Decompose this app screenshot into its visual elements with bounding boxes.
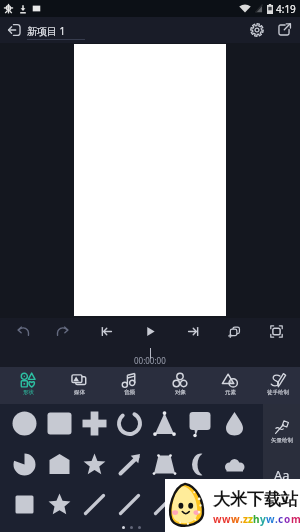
button[interactable]: Skip to start (93, 318, 119, 344)
staticText: y (260, 512, 266, 526)
staticText: w (266, 512, 275, 526)
button[interactable]: Shape 5 (182, 406, 216, 440)
button[interactable]: Shape 15 (42, 487, 76, 521)
button[interactable]: Shape 6 (217, 406, 251, 440)
staticText: 音频 (124, 389, 135, 396)
staticText: o (284, 512, 291, 526)
button[interactable]: Shape 10 (112, 447, 146, 481)
button[interactable]: Shape 2 (77, 406, 111, 440)
button[interactable]: Shape 7 (7, 447, 41, 481)
button[interactable]: Shape 9 (77, 447, 111, 481)
staticText: m (291, 512, 300, 526)
button[interactable]: Shape 11 (147, 447, 181, 481)
button[interactable]: Fullscreen (263, 318, 289, 344)
button[interactable]: 媒体 (54, 367, 104, 404)
staticText: 元素 (225, 389, 236, 396)
button[interactable]: Shape 4 (147, 406, 181, 440)
button[interactable]: Undo (10, 318, 36, 344)
staticText: z (248, 512, 253, 526)
button[interactable]: 音频 (104, 367, 154, 404)
button[interactable]: 徒手绘制 (253, 367, 300, 404)
staticText: w (231, 512, 240, 526)
staticText: w (222, 512, 231, 526)
staticText: 4:19 (276, 2, 296, 16)
staticText: 文本 (276, 485, 287, 492)
staticText: 媒体 (74, 389, 85, 396)
button[interactable]: Shape 13 (217, 447, 251, 481)
button[interactable]: Shape 1 (42, 406, 76, 440)
staticText: h (253, 512, 260, 526)
staticText: 形状 (23, 389, 34, 396)
button[interactable]: Skip to end (180, 318, 206, 344)
button[interactable]: Shape 18 (147, 487, 181, 521)
button[interactable]: Shape 0 (7, 406, 41, 440)
button[interactable]: Shape 19 (182, 487, 216, 521)
button[interactable]: Shape 8 (42, 447, 76, 481)
button[interactable]: Shape 12 (182, 447, 216, 481)
button[interactable]: Export (270, 17, 297, 43)
staticText: 矢量绘制 (271, 437, 293, 444)
staticText: 00:00:00 (134, 355, 166, 366)
button[interactable]: Settings (243, 17, 270, 43)
staticText: c (278, 512, 284, 526)
button[interactable]: 矢量绘制 (263, 419, 300, 444)
button[interactable]: Loop (221, 318, 247, 344)
staticText: 对象 (175, 389, 186, 396)
staticText: 大米下载站 (213, 489, 298, 510)
button[interactable]: Shape 16 (77, 487, 111, 521)
staticText: . (240, 512, 243, 526)
button[interactable]: Aa (263, 466, 300, 492)
button[interactable]: 元素 (205, 367, 255, 404)
staticText: 徒手绘制 (267, 389, 289, 396)
button[interactable]: 形状 (3, 367, 53, 404)
button[interactable]: Shape 3 (112, 406, 146, 440)
button[interactable]: Shape 17 (112, 487, 146, 521)
staticText: w (213, 512, 222, 526)
button[interactable]: Play (137, 318, 163, 344)
button[interactable]: Exit project (0, 17, 27, 43)
staticText: Aa (274, 466, 290, 484)
staticText: 新项目 1 (27, 24, 66, 38)
staticText: . (275, 512, 278, 526)
button[interactable]: Redo (49, 318, 75, 344)
button[interactable]: Shape 20 (217, 487, 251, 521)
button[interactable]: Shape 14 (7, 487, 41, 521)
staticText: z (243, 512, 248, 526)
button[interactable]: 对象 (155, 367, 205, 404)
